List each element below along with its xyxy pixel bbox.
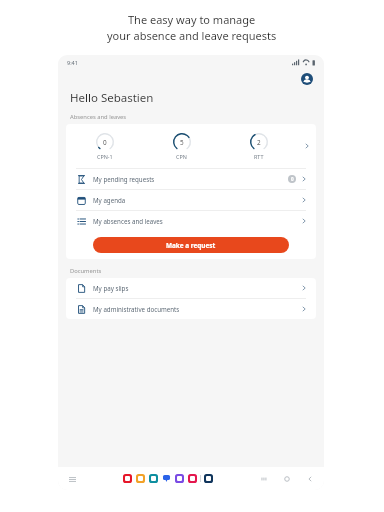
button[interactable]: Video: [188, 474, 197, 483]
staticText: My agenda: [93, 196, 126, 204]
button[interactable]: Back: [305, 474, 315, 484]
staticText: CPN-1: [97, 153, 113, 160]
staticText: RTT: [254, 153, 264, 160]
button[interactable]: My administrative documents: [66, 299, 316, 319]
button[interactable]: Calendar: [149, 474, 158, 483]
staticText: My absences and leaves: [93, 217, 163, 225]
staticText: your absence and leave requests: [107, 28, 277, 43]
button[interactable]: Profile: [301, 73, 313, 85]
staticText: The easy way to manage: [128, 12, 256, 27]
button[interactable]: Chat: [162, 474, 171, 483]
button[interactable]: Recents: [259, 474, 269, 484]
staticText: 9:41: [67, 59, 78, 66]
staticText: 2: [257, 138, 261, 147]
button[interactable]: Menu: [67, 474, 77, 484]
staticText: Hello Sebastien: [70, 90, 154, 106]
staticText: 5: [180, 138, 184, 147]
staticText: My pending requests: [93, 175, 155, 183]
staticText: 0: [291, 176, 294, 182]
staticText: My pay slips: [93, 284, 129, 292]
button[interactable]: Make a request: [93, 237, 289, 253]
button[interactable]: My agenda: [66, 190, 316, 210]
button[interactable]: Settings: [204, 474, 213, 483]
button[interactable]: Home: [282, 474, 292, 484]
staticText: CPN: [176, 153, 187, 160]
button[interactable]: My absences and leaves: [66, 211, 316, 231]
staticText: My administrative documents: [93, 305, 180, 313]
staticText: 0: [103, 138, 107, 147]
staticText: Absences and leaves: [70, 113, 127, 121]
button[interactable]: Files: [123, 474, 132, 483]
staticText: Documents: [70, 267, 102, 275]
staticText: Make a request: [166, 241, 216, 250]
button[interactable]: My pay slips: [66, 278, 316, 298]
button[interactable]: My pending requests: [66, 169, 316, 189]
button[interactable]: Browser: [175, 474, 184, 483]
button[interactable]: 0: [66, 124, 316, 168]
button[interactable]: Notes: [136, 474, 145, 483]
